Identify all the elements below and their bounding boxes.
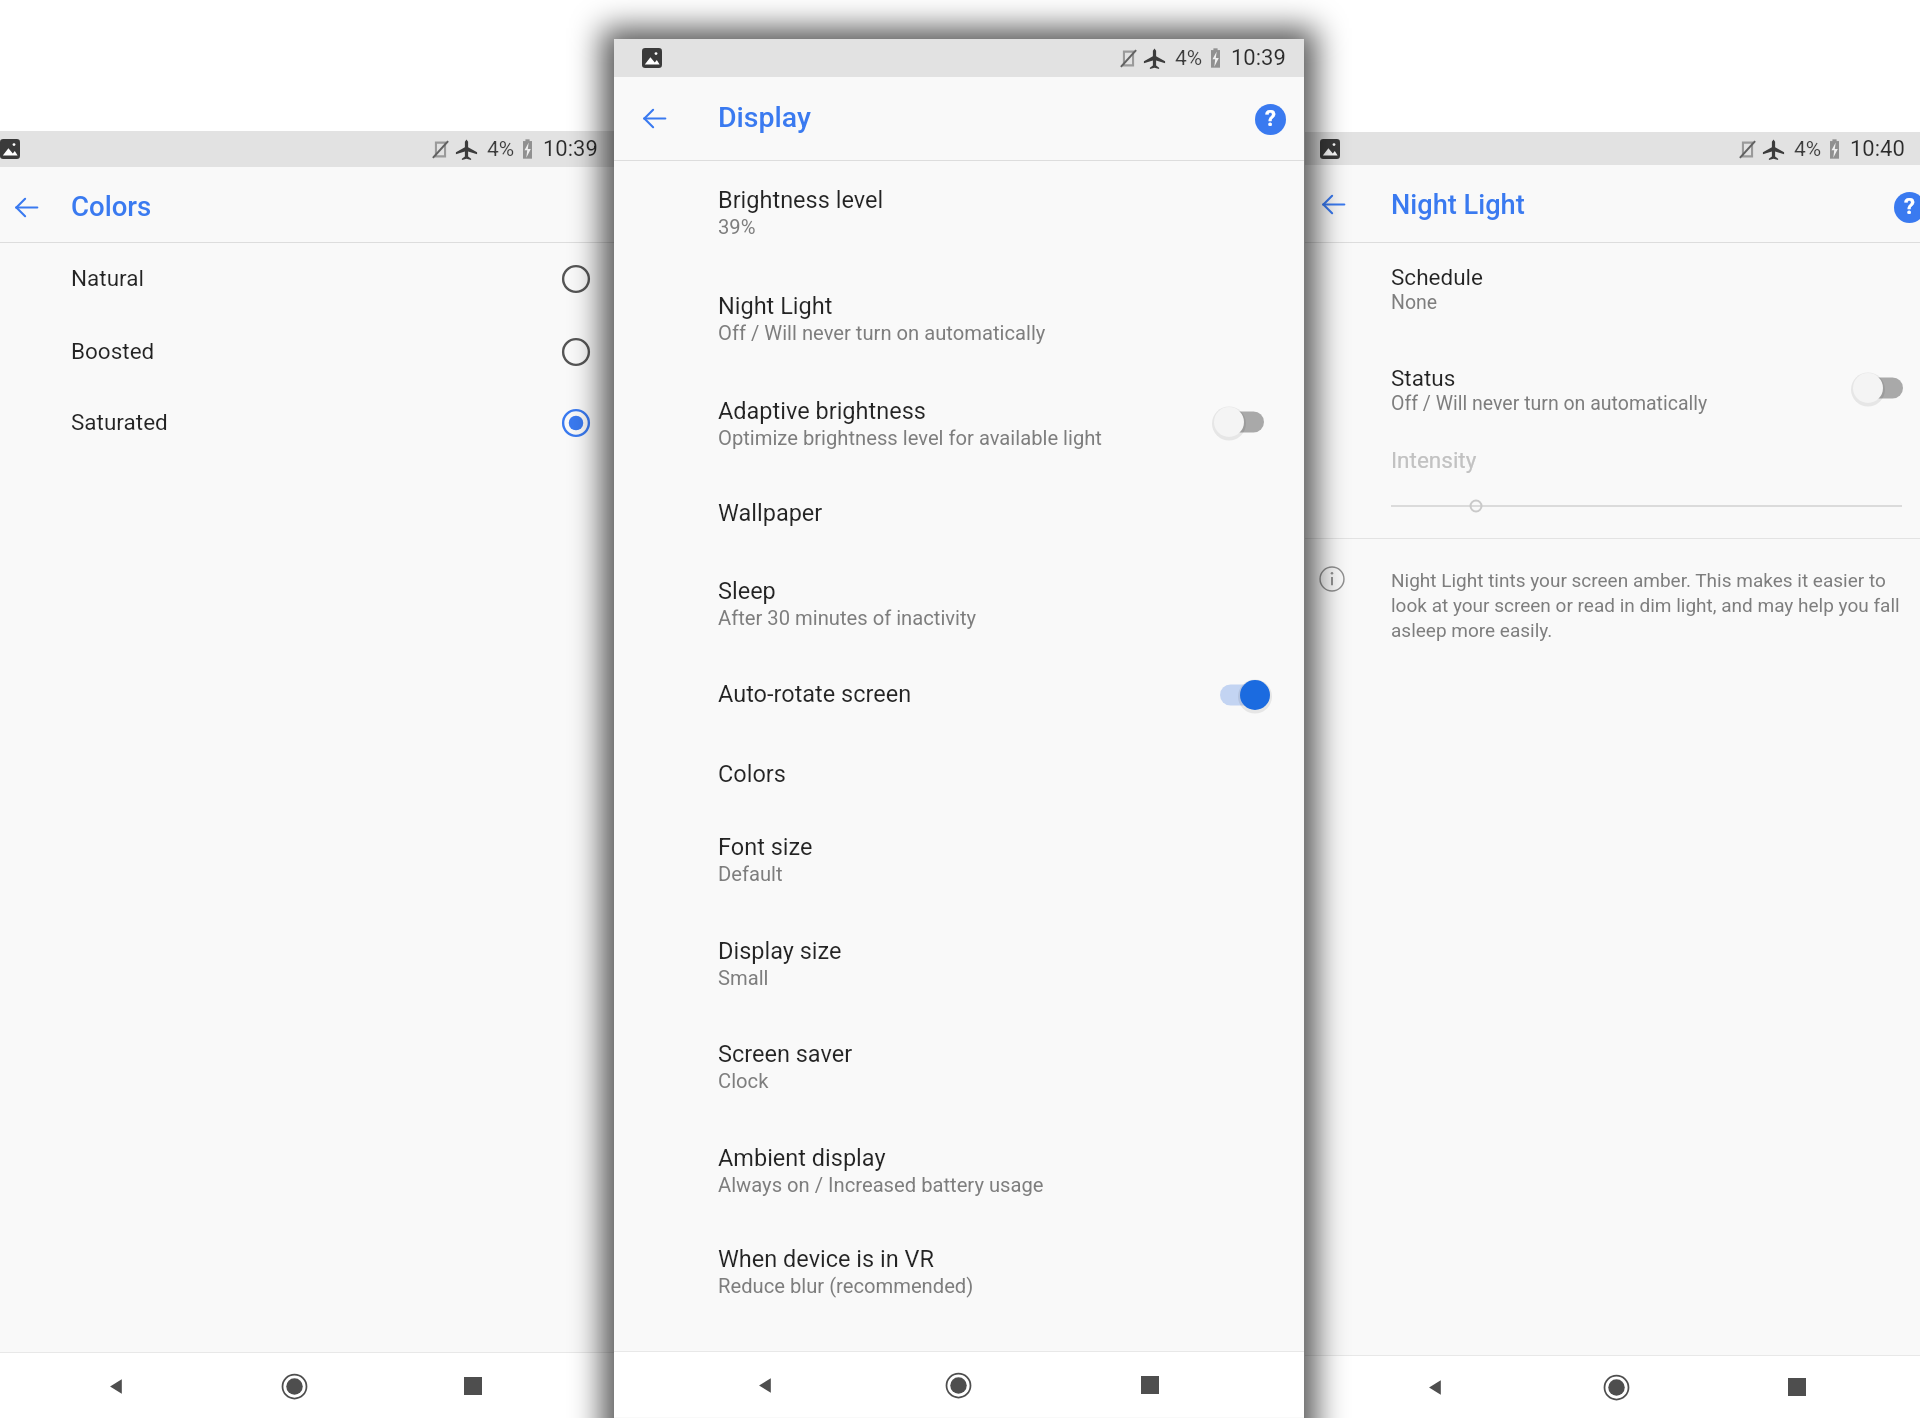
staticText: Natural [71, 265, 144, 291]
staticText: 10:39 [1231, 45, 1286, 71]
staticText: ? [1265, 106, 1276, 132]
button[interactable]: Help [1252, 101, 1288, 137]
staticText: 39% [718, 215, 756, 239]
button[interactable]: Auto-rotate screen [614, 669, 1304, 725]
staticText: Schedule [1391, 264, 1483, 290]
staticText: Colors [71, 190, 152, 222]
button[interactable]: Schedule [1305, 253, 1920, 333]
staticText: Night Light [718, 292, 833, 320]
staticText: Adaptive brightness [718, 397, 926, 425]
button[interactable]: Switch on [1208, 673, 1276, 717]
button[interactable]: Recents [1122, 1357, 1178, 1413]
staticText: 10:40 [1850, 136, 1905, 162]
button[interactable]: Ambient display [614, 1133, 1304, 1213]
button[interactable]: When device is in VR [614, 1234, 1304, 1314]
staticText: Night Light [1391, 189, 1525, 221]
button[interactable]: Back [737, 1357, 793, 1413]
staticText: 10:39 [543, 136, 598, 162]
button[interactable]: Home [266, 1358, 322, 1414]
staticText: When device is in VR [718, 1245, 934, 1273]
staticText: Ambient display [718, 1144, 886, 1172]
button[interactable]: Natural [0, 242, 614, 314]
staticText: Sleep [718, 577, 776, 605]
staticText: Small [718, 966, 769, 990]
staticText: 4% [487, 137, 515, 162]
staticText: Colors [718, 760, 786, 788]
button[interactable]: Saturated [0, 386, 614, 458]
button[interactable]: Adaptive brightness [614, 386, 1304, 466]
staticText: ? [1904, 194, 1915, 220]
button[interactable]: Home [930, 1357, 986, 1413]
button[interactable]: Recents [445, 1358, 501, 1414]
staticText: Brightness level [718, 186, 884, 214]
button[interactable]: Sleep [614, 566, 1304, 646]
staticText: After 30 minutes of inactivity [718, 606, 977, 630]
button[interactable]: Back [641, 105, 667, 131]
button[interactable]: Status [1305, 354, 1920, 434]
staticText: Font size [718, 833, 813, 861]
staticText: Intensity [1391, 447, 1477, 473]
staticText: Always on / Increased battery usage [718, 1173, 1044, 1197]
staticText: 4% [1794, 137, 1822, 162]
staticText: Screen saver [718, 1040, 853, 1068]
staticText: Off / Will never turn on automatically [1391, 392, 1708, 415]
staticText: Reduce blur (recommended) [718, 1274, 974, 1298]
button[interactable]: Back [88, 1358, 144, 1414]
staticText: Night Light tints your screen amber. Thi… [1391, 569, 1900, 641]
button[interactable]: Display size [614, 926, 1304, 1006]
staticText: None [1391, 291, 1438, 314]
button[interactable]: Colors [614, 749, 1304, 805]
button[interactable]: Help [1891, 189, 1920, 225]
staticText: Clock [718, 1069, 769, 1093]
staticText: Wallpaper [718, 499, 823, 527]
button[interactable]: Switch off [1208, 400, 1276, 444]
staticText: Optimize brightness level for available … [718, 426, 1102, 450]
button[interactable]: Wallpaper [614, 488, 1304, 544]
staticText: Saturated [71, 409, 168, 435]
button[interactable]: Back [1320, 191, 1346, 217]
button[interactable]: Back [13, 194, 39, 220]
staticText: Auto-rotate screen [718, 680, 912, 708]
button[interactable]: Boosted [0, 315, 614, 387]
staticText: Off / Will never turn on automatically [718, 321, 1046, 345]
button[interactable]: Home [1588, 1359, 1644, 1415]
button[interactable]: Font size [614, 822, 1304, 902]
staticText: 4% [1175, 46, 1203, 71]
button[interactable]: Back [1407, 1359, 1463, 1415]
button[interactable]: Switch off [1847, 366, 1915, 410]
button[interactable]: Night Light [614, 281, 1304, 361]
staticText: Display [718, 101, 811, 134]
staticText: Boosted [71, 338, 155, 364]
staticText: Status [1391, 365, 1456, 391]
button[interactable]: Recents [1769, 1359, 1825, 1415]
button[interactable]: Screen saver [614, 1029, 1304, 1109]
staticText: Default [718, 862, 783, 886]
button[interactable]: Brightness level [614, 175, 1304, 255]
staticText: Display size [718, 937, 842, 965]
